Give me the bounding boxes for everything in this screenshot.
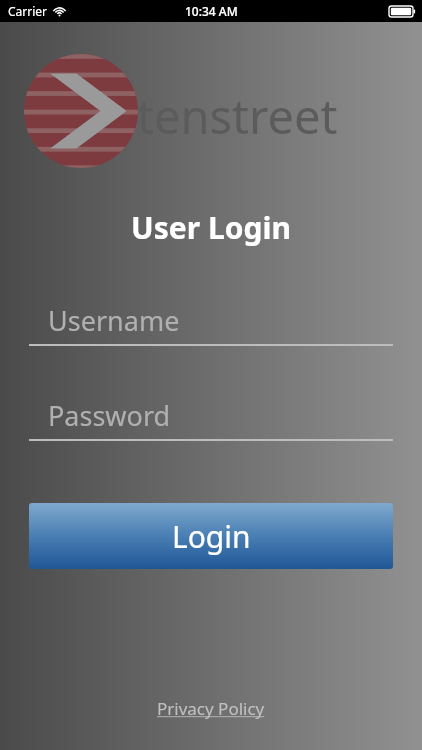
staticText: Privacy Policy: [157, 697, 265, 720]
button[interactable]: Login: [29, 503, 393, 569]
staticText: 10:34 AM: [185, 3, 238, 19]
staticText: Username: [48, 302, 180, 339]
staticText: Carrier: [8, 3, 48, 19]
button[interactable]: Username: [29, 300, 393, 346]
staticText: Password: [48, 397, 171, 434]
staticText: Login: [172, 516, 251, 557]
button[interactable]: Password: [29, 395, 393, 441]
staticText: tenstreet: [137, 84, 338, 148]
staticText: User Login: [0, 207, 422, 248]
button[interactable]: Privacy Policy: [149, 693, 273, 724]
